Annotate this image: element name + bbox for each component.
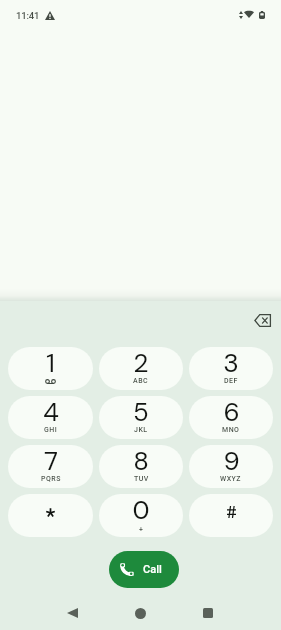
button[interactable]: 5 (99, 396, 183, 439)
button[interactable]: 7 (8, 445, 93, 488)
staticText: 4 (43, 396, 59, 429)
button[interactable]: 1 (8, 347, 93, 390)
staticText: 7 (44, 445, 58, 478)
button[interactable]: 8 (99, 445, 183, 488)
button[interactable]: 6 (189, 396, 273, 439)
button[interactable] (8, 494, 93, 537)
button[interactable]: 4 (8, 396, 93, 439)
staticText: ABC (133, 377, 149, 385)
button[interactable] (189, 494, 273, 537)
staticText: GHI (44, 426, 58, 434)
staticText: 1 (46, 347, 55, 380)
button[interactable]: 3 (189, 347, 273, 390)
staticText: TUV (134, 475, 149, 483)
staticText: 0 (132, 494, 150, 527)
staticText: MNO (222, 426, 240, 434)
button[interactable]: 9 (189, 445, 273, 488)
button[interactable]: 2 (99, 347, 183, 390)
button[interactable]: Back (55, 597, 89, 625)
button[interactable]: Recents (191, 597, 225, 625)
staticText: 8 (133, 445, 149, 478)
staticText: WXYZ (220, 475, 242, 483)
button[interactable]: Home (123, 597, 157, 625)
staticText: 9 (223, 445, 240, 478)
staticText: 6 (223, 396, 240, 429)
staticText: PQRS (41, 475, 61, 483)
staticText: DEF (224, 377, 238, 385)
button[interactable]: Call (109, 551, 179, 588)
staticText: JKL (134, 426, 148, 434)
button[interactable]: Backspace (246, 304, 278, 336)
staticText: 11:41 (16, 10, 40, 21)
staticText: + (139, 526, 143, 534)
button[interactable]: 0 (99, 494, 183, 537)
staticText: 5 (133, 396, 149, 429)
staticText: 3 (223, 347, 239, 380)
staticText: 2 (133, 347, 149, 380)
staticText: Call (143, 563, 162, 576)
